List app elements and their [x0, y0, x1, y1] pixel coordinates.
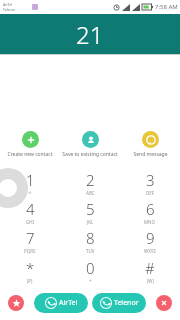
- staticText: 8: [86, 228, 95, 248]
- button[interactable]: 1: [0, 168, 60, 197]
- button[interactable]: Telenor: [92, 293, 146, 313]
- staticText: 7:58 AM: [155, 3, 178, 11]
- staticText: 5: [86, 199, 95, 219]
- button[interactable]: 0: [60, 256, 120, 286]
- button[interactable]: Close: [156, 295, 172, 311]
- staticText: Create new contact: [7, 151, 53, 158]
- staticText: 21: [76, 18, 104, 51]
- button[interactable]: 7: [0, 226, 60, 256]
- button[interactable]: #: [120, 256, 180, 286]
- button[interactable]: 3: [120, 168, 180, 197]
- staticText: JKL: [87, 219, 94, 225]
- button[interactable]: Favorites: [8, 295, 24, 311]
- staticText: PQRS: [24, 248, 36, 254]
- button[interactable]: 6: [120, 197, 180, 226]
- staticText: Telenor: [3, 7, 16, 12]
- staticText: #: [145, 258, 155, 278]
- staticText: 4: [26, 199, 35, 219]
- staticText: DEF: [146, 190, 155, 196]
- button[interactable]: 2: [60, 168, 120, 197]
- staticText: 6: [146, 199, 155, 219]
- button[interactable]: Save to existing contact: [60, 129, 120, 160]
- staticText: 1: [26, 170, 35, 190]
- staticText: ∞: [28, 190, 32, 195]
- staticText: 2: [86, 170, 95, 190]
- button[interactable]: *: [0, 256, 60, 286]
- button[interactable]: AirTel: [34, 293, 88, 313]
- staticText: AirTel: [3, 2, 13, 7]
- staticText: Save to existing contact: [62, 151, 118, 158]
- staticText: 7: [26, 228, 35, 248]
- staticText: TUV: [86, 248, 95, 254]
- staticText: 3: [146, 170, 155, 190]
- staticText: (W): [147, 278, 154, 284]
- staticText: ABC: [86, 190, 95, 196]
- staticText: GHI: [26, 219, 35, 225]
- staticText: (P): [27, 278, 33, 284]
- button[interactable]: 4: [0, 197, 60, 226]
- button[interactable]: 5: [60, 197, 120, 226]
- button[interactable]: Send message: [120, 129, 180, 160]
- staticText: MNO: [144, 219, 156, 225]
- staticText: Send message: [133, 151, 168, 158]
- staticText: +: [89, 278, 92, 284]
- staticText: WXYZ: [144, 248, 156, 254]
- staticText: 9: [146, 228, 155, 248]
- button[interactable]: 9: [120, 226, 180, 256]
- button[interactable]: 8: [60, 226, 120, 256]
- staticText: Telenor: [114, 298, 139, 308]
- staticText: *: [26, 258, 35, 278]
- button[interactable]: Create new contact: [0, 129, 60, 160]
- staticText: 0: [86, 258, 95, 278]
- staticText: AirTel: [59, 298, 78, 308]
